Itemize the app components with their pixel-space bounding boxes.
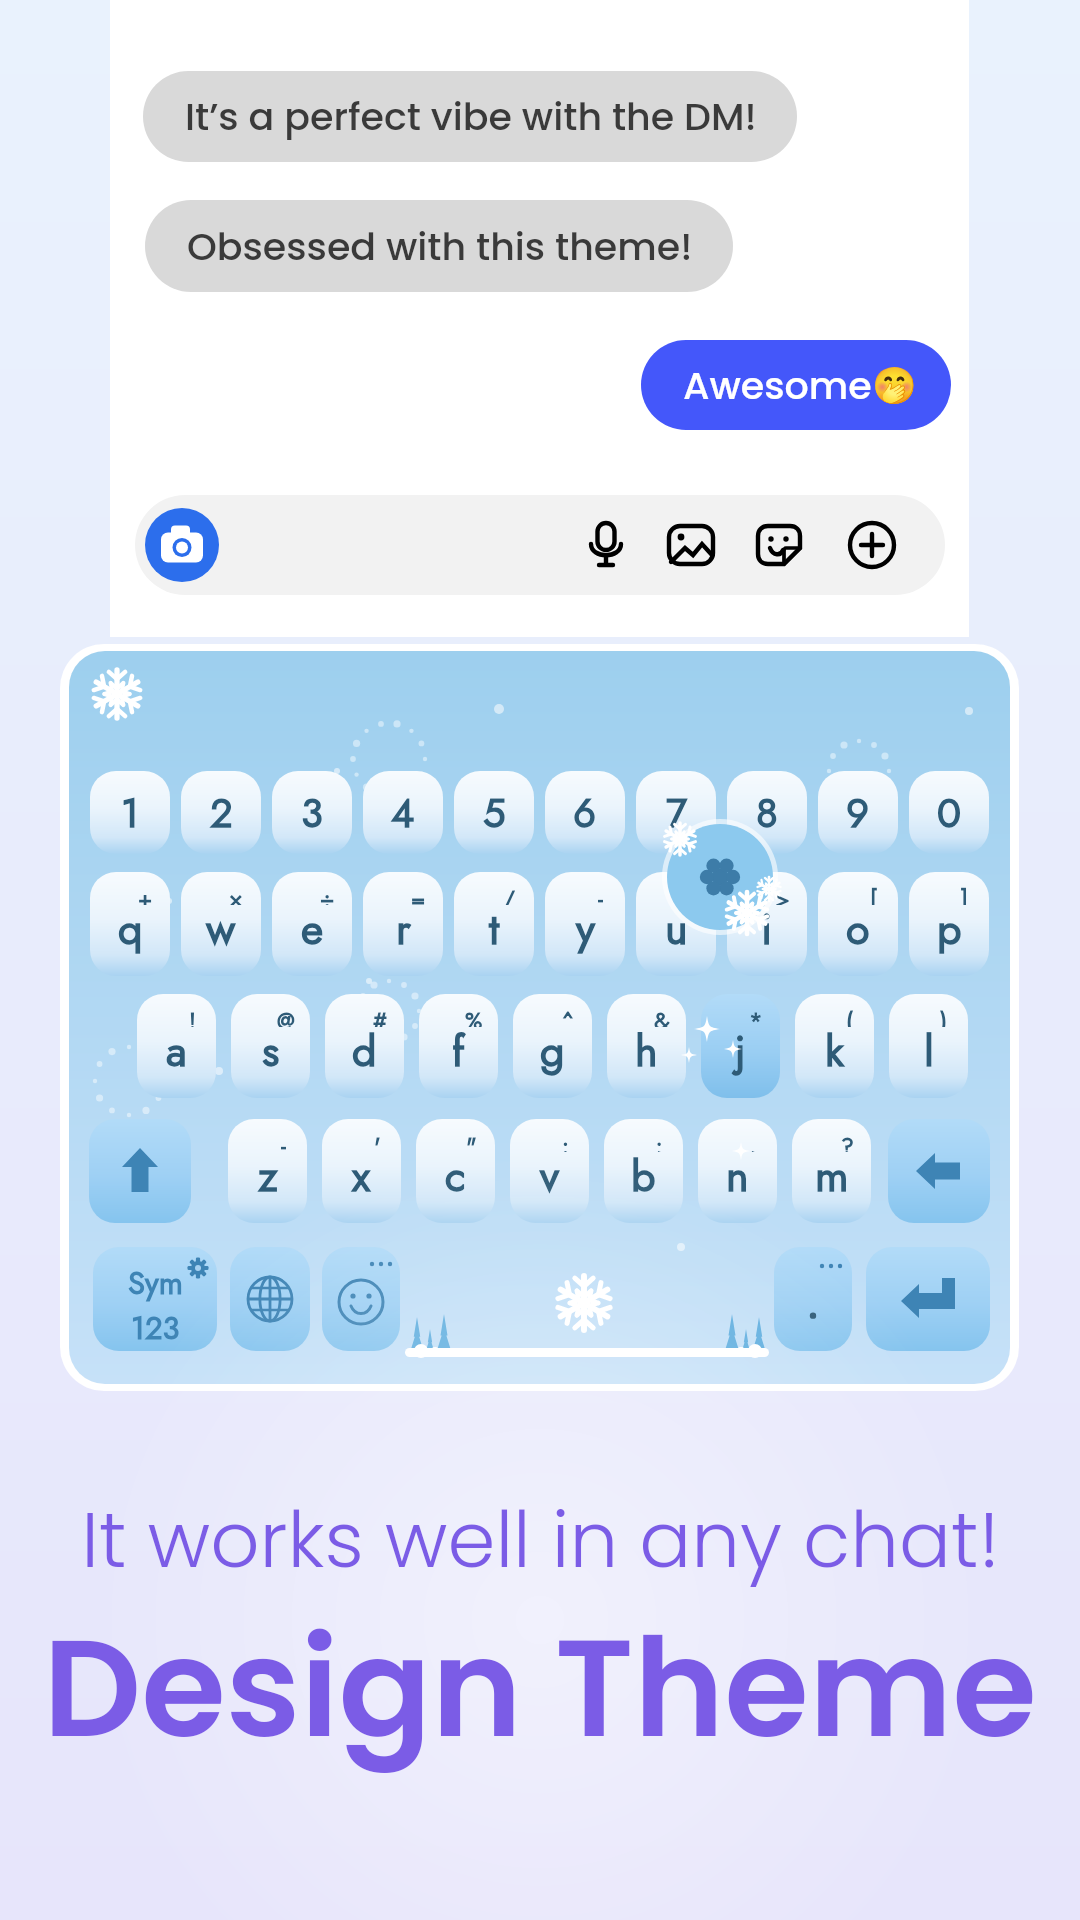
staticText: @ [277,1004,295,1027]
button[interactable]: a [137,994,216,1098]
staticText: ^ [562,1004,574,1027]
staticText: × [229,882,243,905]
button[interactable]: 1 [90,771,170,854]
button[interactable]: q [90,872,170,976]
staticText: , [749,1129,757,1152]
staticText: ] [961,882,968,905]
button[interactable]: Camera [145,508,219,582]
staticText: Obsessed with this theme! [187,220,693,273]
staticText: > [775,882,790,905]
button[interactable]: d [325,994,404,1098]
staticText: 🤭 [872,365,917,407]
staticText: + [138,882,153,905]
staticText: [ [870,882,877,905]
button[interactable]: p [909,872,989,976]
staticText: " [466,1129,477,1152]
staticText: ) [940,1004,948,1027]
staticText: h [635,1020,658,1082]
button[interactable]: u [636,872,716,976]
staticText: 5 [483,784,506,842]
button[interactable] [230,1247,310,1351]
button[interactable] [888,1119,990,1223]
staticText: - [281,1129,286,1152]
staticText: - [598,882,603,905]
button[interactable]: 7 [636,771,716,854]
button[interactable]: Voice message [579,518,633,572]
staticText: It works well in any chat! [81,1486,1000,1594]
button[interactable]: h [607,994,686,1098]
staticText: 123 [131,1306,180,1351]
staticText: e [301,898,324,960]
staticText: 1 [121,784,139,842]
button[interactable]: j [701,994,780,1098]
staticText: / [503,882,515,905]
button[interactable]: x [322,1119,401,1223]
button[interactable]: m [792,1119,871,1223]
button[interactable] [89,1119,191,1223]
staticText: 3 [301,784,323,842]
staticText: 2 [210,784,233,842]
staticText: Design Theme [43,1592,1037,1784]
staticText: ' [374,1129,381,1152]
staticText: y [576,898,595,960]
staticText: = [411,882,426,905]
button[interactable]: y [545,872,625,976]
button[interactable]: It’s a perfect vibe with the DM! [143,71,797,162]
button[interactable]: 2 [181,771,261,854]
staticText: t [489,898,500,960]
staticText: u [665,898,688,960]
button[interactable] [774,1247,852,1351]
button[interactable]: o [818,872,898,976]
staticText: f [452,1020,465,1082]
staticText: r [396,898,411,960]
staticText: g [540,1020,565,1082]
button[interactable]: 5 [454,771,534,854]
button[interactable]: g [513,994,592,1098]
button[interactable]: 8 [727,771,807,854]
button[interactable]: l [889,994,968,1098]
staticText: c [445,1145,466,1207]
button[interactable]: n [698,1119,777,1223]
staticText: a [166,1020,187,1082]
staticText: s [262,1020,280,1082]
staticText: x [352,1145,371,1207]
button[interactable]: More [845,518,899,572]
staticText: ( [846,1004,854,1027]
staticText: m [815,1145,849,1207]
button[interactable]: b [604,1119,683,1223]
button[interactable]: k [795,994,874,1098]
staticText: 8 [756,784,778,842]
staticText: k [825,1020,844,1082]
button[interactable] [866,1247,990,1351]
button[interactable]: Gallery [664,518,718,572]
button[interactable]: w [181,872,261,976]
button[interactable]: v [510,1119,589,1223]
button[interactable]: z [228,1119,307,1223]
staticText: z [258,1145,278,1207]
staticText: ; [655,1129,663,1152]
button[interactable]: 4 [363,771,443,854]
button[interactable]: 0 [909,771,989,854]
button[interactable]: Sticker [752,518,806,572]
staticText: 6 [573,784,597,842]
button[interactable]: Sym [93,1247,217,1351]
staticText: p [937,898,962,960]
button[interactable] [322,1247,400,1351]
staticText: ? [841,1129,854,1152]
button[interactable]: 3 [272,771,352,854]
button[interactable]: i [727,872,807,976]
staticText: # [373,1004,387,1027]
staticText: & [654,1004,670,1027]
staticText: q [118,898,143,960]
staticText: i [761,898,773,960]
button[interactable]: s [231,994,310,1098]
button[interactable]: c [416,1119,495,1223]
button[interactable]: f [419,994,498,1098]
button[interactable]: Awesome [641,340,951,430]
button[interactable]: e [272,872,352,976]
button[interactable]: t [454,872,534,976]
button[interactable]: 9 [818,771,898,854]
button[interactable]: 6 [545,771,625,854]
button[interactable]: Obsessed with this theme! [145,200,733,292]
button[interactable]: r [363,872,443,976]
